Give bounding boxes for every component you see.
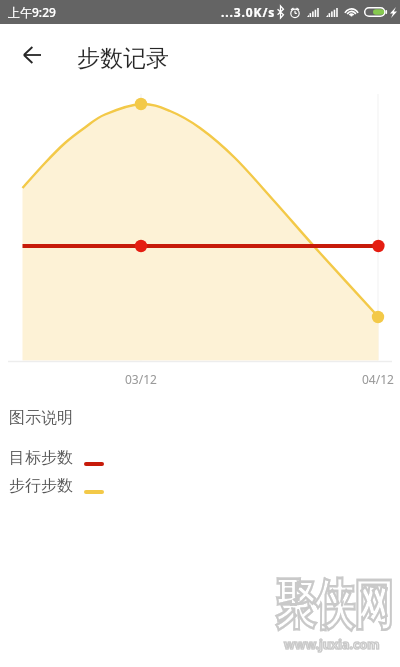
staticText: www.juxia.com [284, 636, 380, 653]
staticText: 目标步数 [9, 448, 73, 468]
button[interactable]: 步行步数 [9, 476, 104, 496]
staticText: 图示说明 [9, 408, 73, 428]
staticText: 上午9:29 [8, 4, 56, 20]
staticText: 04/12 [362, 371, 394, 387]
staticText: 步行步数 [9, 476, 73, 496]
staticText: 步数记录 [77, 44, 169, 73]
button[interactable]: 目标步数 [9, 448, 104, 468]
button[interactable]: Back [9, 32, 55, 78]
staticText: 03/12 [125, 371, 157, 387]
staticText: ...3.0K/s [221, 4, 276, 20]
staticText: 聚侠网 [276, 572, 393, 638]
